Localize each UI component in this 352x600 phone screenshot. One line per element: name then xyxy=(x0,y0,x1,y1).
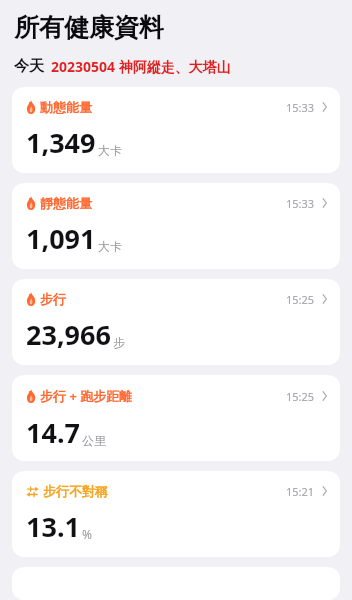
staticText: 今天 xyxy=(14,57,44,76)
button[interactable]: 動態能量 xyxy=(12,87,340,173)
staticText: 大卡 xyxy=(98,143,122,158)
staticText: 1,349 xyxy=(26,124,96,161)
staticText: 14.7 xyxy=(26,414,80,451)
button[interactable]: 靜態能量 xyxy=(12,183,340,269)
staticText: 15:21 xyxy=(285,484,314,499)
button[interactable]: 步行 + 跑步距離 xyxy=(12,375,340,461)
staticText: 13.1 xyxy=(26,508,80,545)
staticText: 靜態能量 xyxy=(40,195,92,211)
staticText: 所有健康資料 xyxy=(14,12,164,43)
staticText: 15:33 xyxy=(285,196,314,211)
button[interactable]: 步行不對稱 xyxy=(12,471,340,557)
staticText: 15:25 xyxy=(285,389,314,404)
staticText: % xyxy=(82,526,92,542)
staticText: 動態能量 xyxy=(40,99,92,115)
staticText: 15:25 xyxy=(285,292,314,307)
staticText: 步行 xyxy=(40,291,66,307)
staticText: 公里 xyxy=(82,433,106,448)
staticText: 步行 + 跑步距離 xyxy=(40,387,133,405)
staticText: 步行不對稱 xyxy=(43,483,108,499)
button[interactable]: 步行 xyxy=(12,279,340,365)
staticText: 20230504 神阿縱走、大塔山 xyxy=(51,57,231,76)
staticText: 大卡 xyxy=(98,239,122,254)
staticText: 1,091 xyxy=(26,220,96,257)
staticText: 23,966 xyxy=(26,316,111,353)
staticText: 步 xyxy=(113,335,125,350)
staticText: 15:33 xyxy=(285,100,314,115)
